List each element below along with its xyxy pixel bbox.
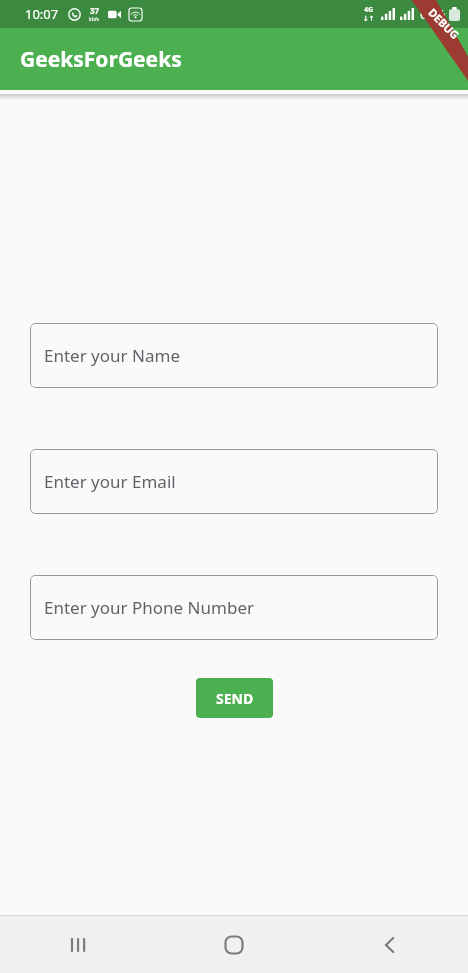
staticText: ↓↑ bbox=[363, 15, 375, 23]
staticText: 10:07 bbox=[25, 5, 59, 23]
staticText: kb/s bbox=[89, 16, 100, 23]
staticText: 60% bbox=[420, 5, 446, 23]
button[interactable]: Home bbox=[156, 916, 312, 973]
button[interactable]: Enter your Email bbox=[30, 449, 438, 514]
staticText: Enter your Phone Number bbox=[44, 596, 255, 619]
staticText: SEND bbox=[216, 689, 254, 708]
staticText: 37 bbox=[90, 5, 100, 16]
button[interactable]: Enter your Phone Number bbox=[30, 575, 438, 640]
staticText: DEBUG bbox=[425, 5, 463, 42]
button[interactable]: Recent apps bbox=[0, 916, 156, 973]
button[interactable]: Enter your Name bbox=[30, 323, 438, 388]
button[interactable]: SEND bbox=[196, 678, 273, 718]
button[interactable]: Back bbox=[312, 916, 468, 973]
staticText: GeeksForGeeks bbox=[20, 45, 182, 74]
staticText: Enter your Name bbox=[44, 344, 180, 367]
staticText: Enter your Email bbox=[44, 470, 176, 493]
staticText: 4G bbox=[364, 5, 374, 15]
